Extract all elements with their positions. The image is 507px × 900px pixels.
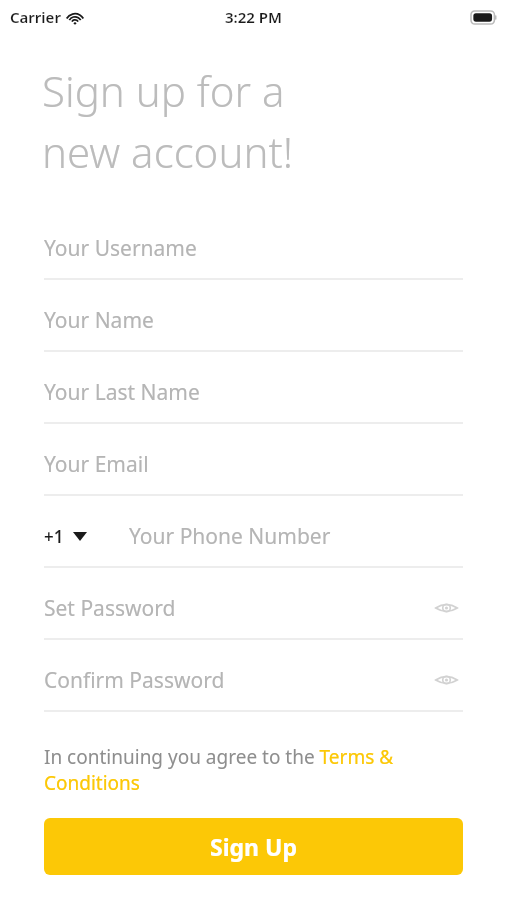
staticText: +1	[44, 525, 64, 548]
button[interactable]: Sign Up	[44, 818, 463, 875]
staticText: 3:22 PM	[225, 7, 282, 27]
staticText: Confirm Password	[44, 666, 225, 695]
button[interactable]: +1	[0, 506, 507, 578]
button[interactable]: Show password	[429, 591, 463, 625]
staticText: Carrier	[10, 7, 61, 27]
staticText: Sign Up	[210, 831, 297, 862]
other: Select country code	[73, 532, 87, 541]
staticText: In continuing you agree to the Terms & C…	[44, 744, 463, 796]
staticText: Your Name	[44, 306, 154, 335]
staticText: Your Email	[44, 450, 149, 479]
button[interactable]: Your Last Name	[0, 362, 507, 434]
staticText: Sign up for a	[42, 62, 285, 119]
button[interactable]: Your Name	[0, 290, 507, 362]
staticText: Your Phone Number	[129, 522, 331, 551]
button[interactable]: Your Email	[0, 434, 507, 506]
button[interactable]: Your Username	[0, 218, 507, 290]
button[interactable]: Show password	[429, 663, 463, 697]
staticText: Your Username	[44, 234, 197, 263]
staticText: Your Last Name	[44, 378, 200, 407]
staticText: new account!	[42, 123, 293, 180]
button[interactable]: Confirm Password	[0, 650, 507, 722]
staticText: Set Password	[44, 594, 176, 623]
button[interactable]: Set Password	[0, 578, 507, 650]
